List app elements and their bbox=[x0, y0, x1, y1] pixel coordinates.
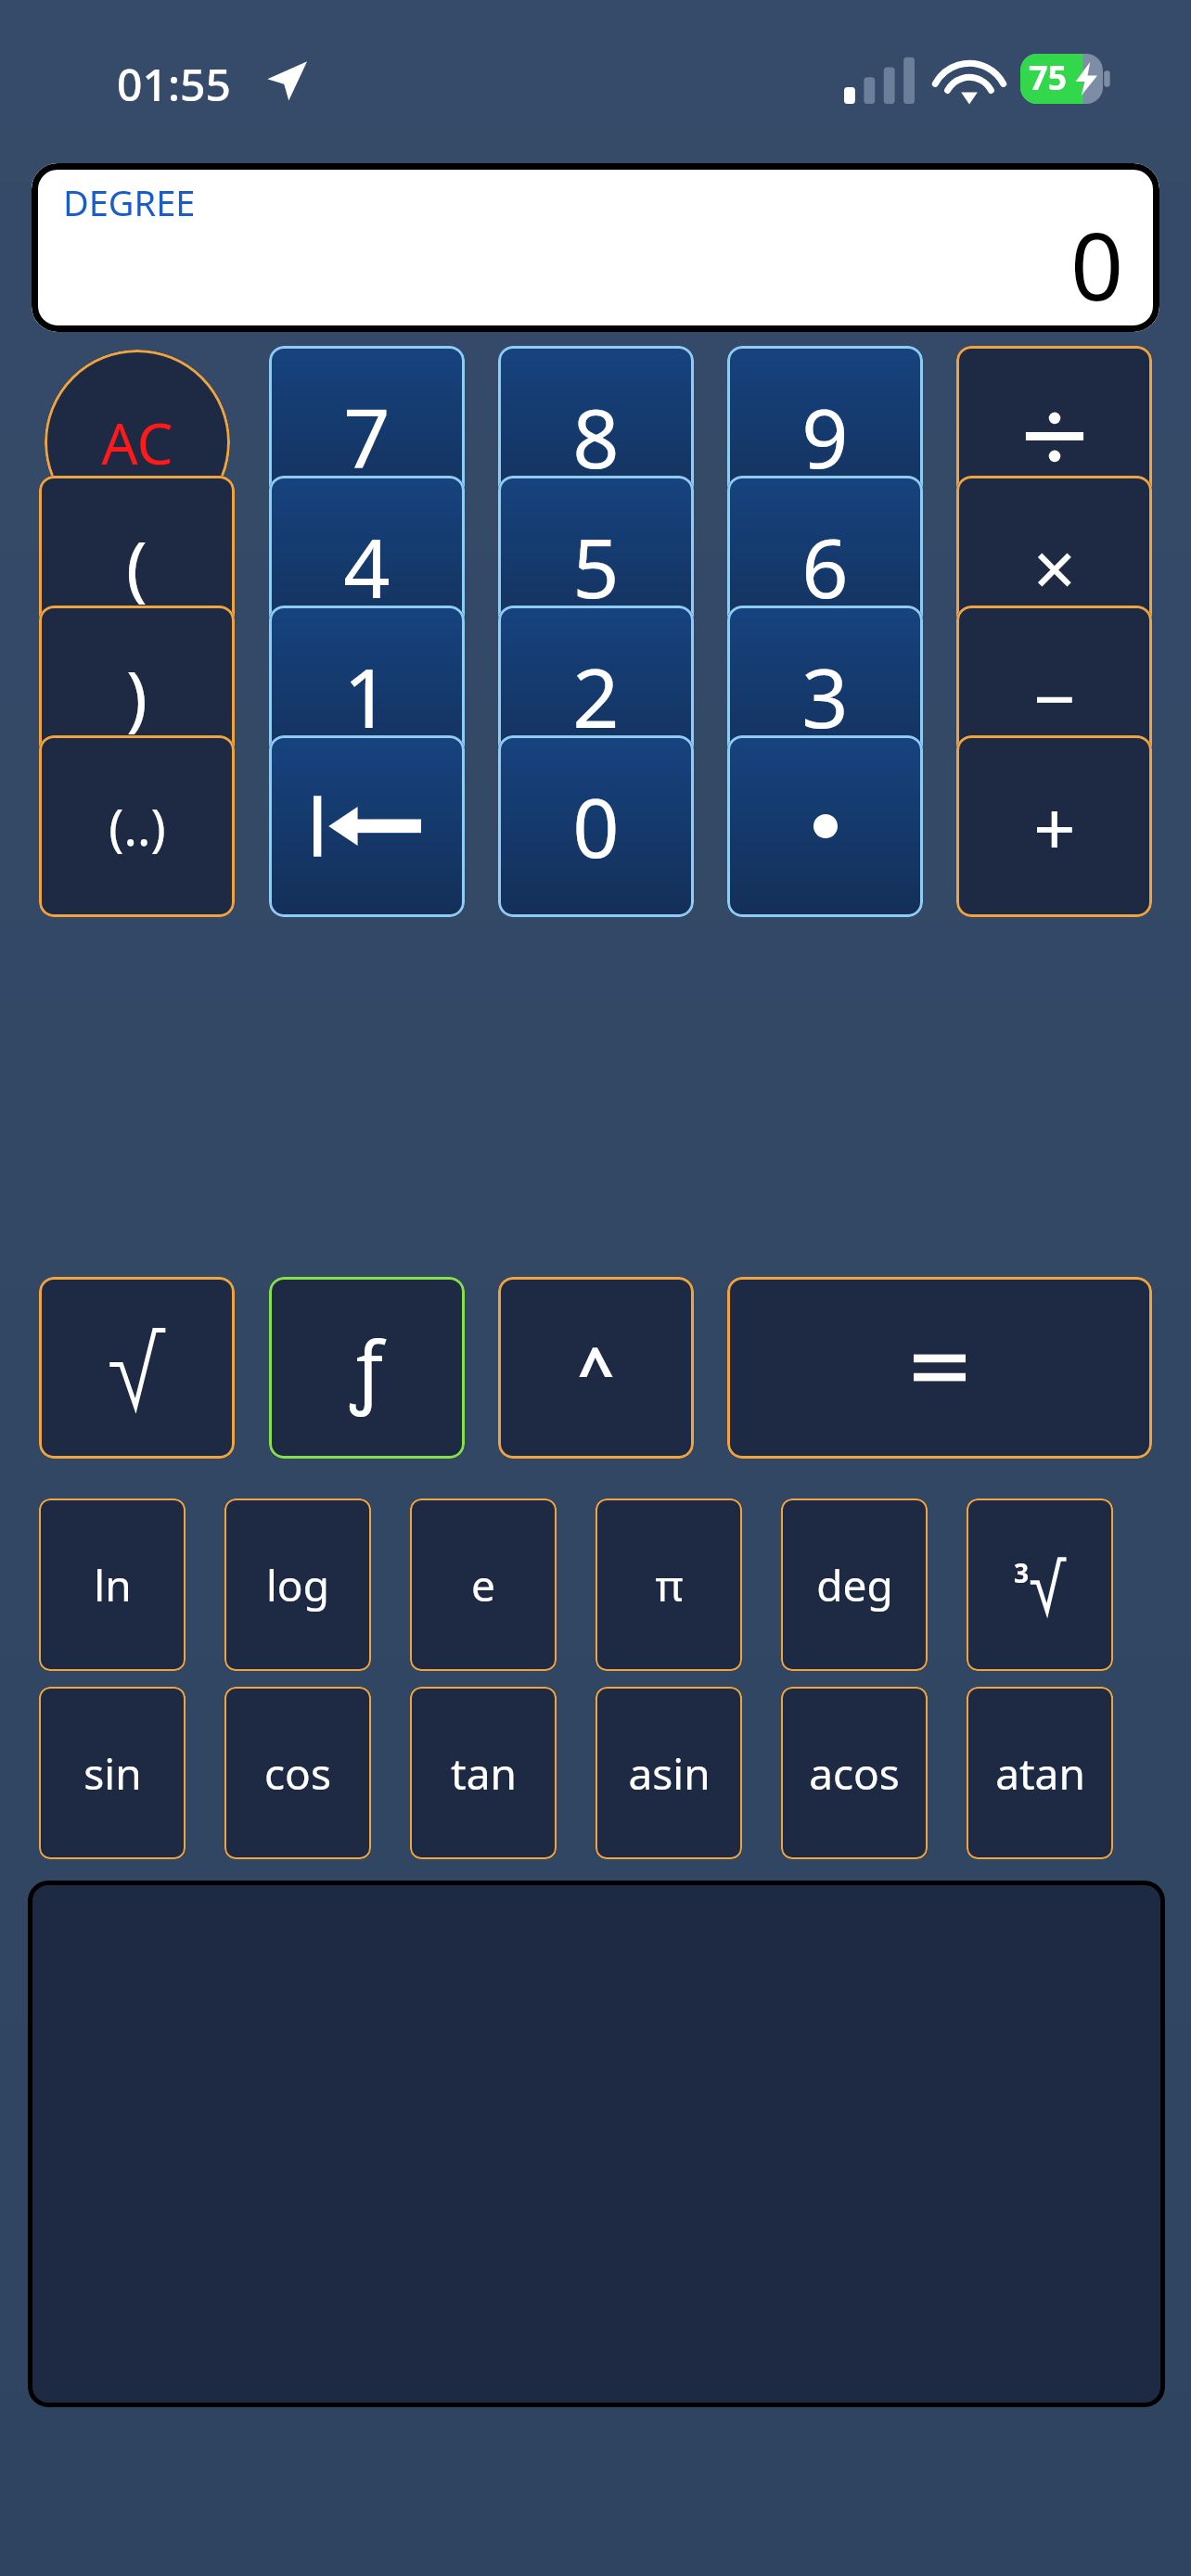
button[interactable]: Backspace bbox=[269, 735, 465, 917]
staticText: ln bbox=[94, 1556, 132, 1614]
button[interactable]: ln bbox=[39, 1498, 186, 1671]
staticText: cos bbox=[264, 1744, 331, 1803]
button[interactable]: 7 bbox=[269, 346, 465, 528]
staticText: 0 bbox=[572, 771, 620, 882]
staticText: ( bbox=[126, 518, 147, 615]
button[interactable]: 9 bbox=[727, 346, 923, 528]
staticText: ƒ bbox=[351, 1315, 383, 1421]
button[interactable]: ) bbox=[39, 606, 235, 787]
button[interactable]: atan bbox=[967, 1687, 1113, 1859]
staticText: tan bbox=[451, 1744, 517, 1803]
button[interactable]: AC bbox=[45, 350, 230, 535]
staticText: ) bbox=[126, 648, 147, 745]
staticText: 2 bbox=[572, 641, 620, 752]
button[interactable]: Plus bbox=[956, 735, 1152, 917]
staticText: (..) bbox=[109, 792, 166, 861]
button[interactable]: Decimal point bbox=[727, 735, 923, 917]
button[interactable]: tan bbox=[410, 1687, 557, 1859]
staticText: 3 bbox=[1014, 1555, 1030, 1590]
staticText: 4 bbox=[343, 511, 391, 622]
button[interactable]: Function bbox=[269, 1277, 465, 1459]
staticText: sin bbox=[83, 1744, 142, 1803]
button[interactable]: 5 bbox=[498, 476, 694, 657]
button[interactable]: (..) bbox=[39, 735, 235, 917]
staticText: 6 bbox=[801, 511, 849, 622]
staticText: π bbox=[655, 1556, 684, 1614]
staticText: log bbox=[266, 1556, 329, 1614]
button[interactable]: sin bbox=[39, 1687, 186, 1859]
staticText: 9 bbox=[801, 381, 849, 492]
button[interactable]: Minus bbox=[956, 606, 1152, 787]
button[interactable]: 8 bbox=[498, 346, 694, 528]
button[interactable]: π bbox=[595, 1498, 742, 1671]
staticText: e bbox=[471, 1556, 495, 1614]
staticText: 0 bbox=[1070, 201, 1124, 327]
staticText: acos bbox=[809, 1744, 900, 1803]
button[interactable]: Equals bbox=[727, 1277, 1152, 1459]
button[interactable]: deg bbox=[781, 1498, 928, 1671]
button[interactable]: DEGREE bbox=[32, 163, 1159, 332]
staticText: 3 bbox=[801, 641, 849, 752]
button[interactable]: Power bbox=[498, 1277, 694, 1459]
staticText: 7 bbox=[343, 381, 391, 492]
button[interactable]: 6 bbox=[727, 476, 923, 657]
staticText: asin bbox=[628, 1744, 711, 1803]
button[interactable]: 4 bbox=[269, 476, 465, 657]
button[interactable]: Divide bbox=[956, 346, 1152, 528]
button[interactable]: 1 bbox=[269, 606, 465, 787]
button[interactable]: Multiply bbox=[956, 476, 1152, 657]
staticText: − bbox=[1033, 646, 1076, 747]
staticText: AC bbox=[101, 403, 173, 481]
staticText: atan bbox=[995, 1744, 1085, 1803]
button[interactable]: asin bbox=[595, 1687, 742, 1859]
staticText: + bbox=[1033, 776, 1076, 877]
button[interactable] bbox=[28, 1881, 1165, 2407]
button[interactable]: e bbox=[410, 1498, 557, 1671]
staticText: deg bbox=[816, 1556, 893, 1614]
staticText: 01:55 bbox=[117, 54, 231, 114]
staticText: × bbox=[1033, 516, 1076, 618]
button[interactable]: Cube root bbox=[967, 1498, 1113, 1671]
staticText: 1 bbox=[343, 641, 391, 752]
staticText: 8 bbox=[572, 381, 620, 492]
button[interactable]: Square root bbox=[39, 1277, 235, 1459]
button[interactable]: 2 bbox=[498, 606, 694, 787]
button[interactable]: 0 bbox=[498, 735, 694, 917]
button[interactable]: log bbox=[224, 1498, 371, 1671]
button[interactable]: 3 bbox=[727, 606, 923, 787]
staticText: ^ bbox=[578, 1325, 614, 1411]
button[interactable]: cos bbox=[224, 1687, 371, 1859]
staticText: DEGREE bbox=[63, 178, 196, 226]
button[interactable]: ( bbox=[39, 476, 235, 657]
staticText: 5 bbox=[572, 511, 620, 622]
button[interactable]: acos bbox=[781, 1687, 928, 1859]
staticText: 75 bbox=[1029, 55, 1068, 100]
